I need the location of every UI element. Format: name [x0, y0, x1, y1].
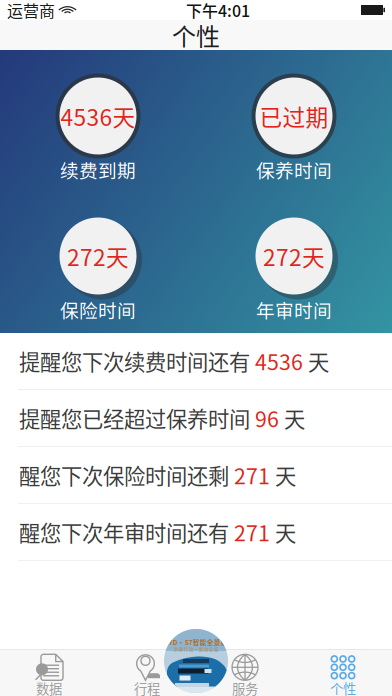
staticText: 天: [279, 403, 305, 433]
staticText: 服务: [232, 679, 258, 696]
staticText: 272天: [67, 240, 129, 272]
staticText: 272天: [263, 240, 325, 272]
staticText: 提醒您已经超过保养时间: [19, 403, 255, 433]
button[interactable]: 车辆: [164, 629, 228, 693]
button[interactable]: 提醒您已经超过保养时间: [0, 390, 392, 447]
staticText: 新春行动·惠动全城: [173, 646, 218, 652]
staticText: 天: [270, 517, 296, 547]
staticText: 271: [234, 460, 270, 490]
button[interactable]: 服务: [196, 650, 294, 696]
staticText: BYD·S7智能全景版: [164, 637, 227, 647]
button[interactable]: 提醒您下次续费时间还有: [0, 333, 392, 390]
staticText: 续费到期: [60, 156, 136, 183]
button[interactable]: 醒您下次年审时间还有: [0, 504, 392, 561]
staticText: 下午4:01: [186, 0, 250, 22]
button[interactable]: 4536天: [0, 71, 196, 178]
button[interactable]: 数据: [0, 650, 98, 696]
staticText: 保养时间: [256, 156, 332, 183]
staticText: 4536: [255, 346, 303, 376]
staticText: 年审时间: [256, 296, 332, 323]
staticText: 醒您下次保险时间还剩: [19, 460, 234, 490]
staticText: 个性: [172, 18, 220, 52]
staticText: 运营商: [7, 0, 55, 22]
staticText: 醒您下次年审时间还有: [19, 517, 234, 547]
staticText: 保险时间: [60, 296, 136, 323]
button[interactable]: 已过期: [196, 71, 392, 178]
button[interactable]: 行程: [98, 650, 196, 696]
staticText: 已过期: [259, 100, 328, 132]
staticText: 4536天: [60, 100, 135, 132]
button[interactable]: 个性: [294, 650, 392, 696]
staticText: 天: [303, 346, 329, 376]
staticText: 行程: [134, 679, 160, 696]
staticText: 271: [234, 517, 270, 547]
staticText: 96: [255, 403, 279, 433]
staticText: 数据: [36, 679, 62, 696]
staticText: 提醒您下次续费时间还有: [19, 346, 255, 376]
staticText: 个性: [330, 679, 356, 696]
staticText: 天: [270, 460, 296, 490]
button[interactable]: 醒您下次保险时间还剩: [0, 447, 392, 504]
button[interactable]: 272天: [0, 211, 196, 318]
button[interactable]: 272天: [196, 211, 392, 318]
